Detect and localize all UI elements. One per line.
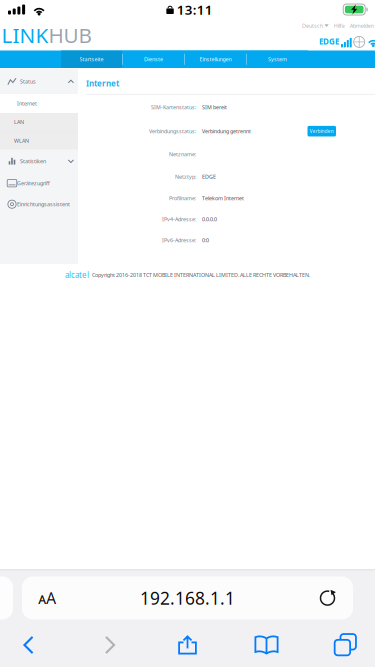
staticText: SIM-Kartenstatus: [151,104,196,111]
button[interactable]: Forward [85,628,135,662]
button[interactable]: WLAN [0,132,78,150]
staticText: alcatel [65,270,89,280]
staticText: Einrichtungsassistent [17,201,70,208]
staticText: ᴀA [38,587,56,609]
staticText: Einstellungen [199,56,231,63]
button[interactable]: Deutsch [302,22,329,29]
staticText: Internet [86,78,119,89]
staticText: Telekom Internet [202,195,244,202]
staticText: WLAN [14,137,29,144]
staticText: Internet [17,100,37,107]
staticText: Statistiken [20,158,46,165]
staticText: Verbindungsstatus: [149,128,196,135]
button[interactable]: LAN [0,113,78,131]
button[interactable]: Startseite [61,50,122,68]
button[interactable]: Hilfe [334,22,345,29]
staticText: LAN [14,118,24,126]
staticText: Netzname: [169,151,196,158]
staticText: Gerätezugriff [17,180,50,187]
button[interactable]: Tabs [320,628,370,662]
button[interactable]: Internet [0,94,78,113]
button[interactable]: Abmelden [350,22,374,29]
staticText: Status [20,78,36,85]
staticText: LINK [1,21,48,49]
button[interactable]: Einrichtungsassistent [0,194,78,215]
button[interactable]: Status [0,69,78,94]
staticText: EDGE [202,173,216,180]
button[interactable]: Share [162,628,212,662]
staticText: Abmelden [350,22,374,29]
staticText: 0.0.0.0 [202,216,217,223]
staticText: HUB [48,21,91,49]
staticText: 192.168.1.1 [140,586,235,610]
staticText: 13:11 [177,0,213,19]
staticText: Deutsch [302,22,323,29]
staticText: Verbindung getrennt [202,128,251,135]
button[interactable]: Verbinden [307,126,336,136]
button[interactable]: Bookmarks [241,628,291,662]
staticText: EDGE [319,36,339,47]
staticText: Startseite [79,56,103,63]
staticText: 0:0 [202,237,209,244]
button[interactable]: Einstellungen [185,50,246,68]
button[interactable]: Back [3,628,53,662]
button[interactable]: Statistiken [0,150,78,173]
staticText: Profilname: [169,195,196,202]
staticText: Netztyp: [175,173,196,180]
button[interactable]: Dienste [123,50,184,68]
staticText: SIM bereit [202,104,227,111]
staticText: Dienste [144,56,163,63]
button[interactable]: ᴀA [22,576,353,619]
staticText: Copyright 2016-2018 TCT MOBILE INTERNATI… [92,271,310,279]
staticText: Hilfe [334,22,345,29]
staticText: IPv4-Adresse: [162,216,196,223]
button[interactable]: Gerätezugriff [0,173,78,194]
staticText: IPv6-Adresse: [162,237,196,244]
staticText: Verbinden [310,128,334,134]
staticText: System [268,56,287,63]
button[interactable]: System [247,50,308,68]
